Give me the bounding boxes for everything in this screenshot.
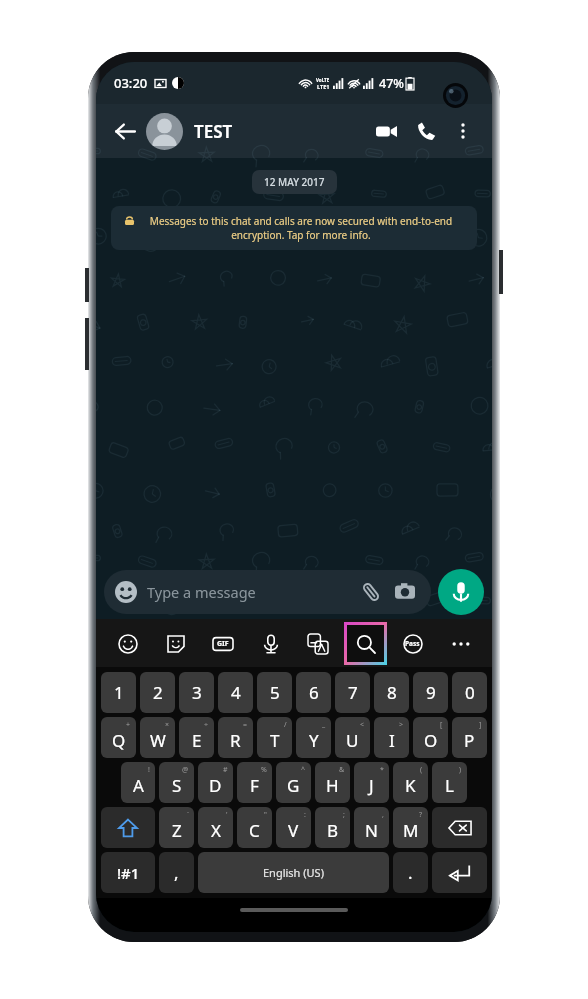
staticText: U (346, 729, 359, 752)
button[interactable]: GIF (201, 622, 244, 665)
button[interactable]: ( (393, 762, 428, 803)
button[interactable]: ) (432, 762, 467, 803)
staticText: 47% (379, 75, 404, 92)
button[interactable]: 9 (413, 672, 448, 713)
staticText: S (172, 774, 182, 797)
button[interactable]: & (315, 762, 350, 803)
button[interactable]: Stickers (154, 622, 197, 665)
button[interactable]: > (374, 717, 409, 758)
button[interactable]: TEST (146, 113, 366, 150)
button[interactable]: , (159, 852, 194, 893)
button[interactable]: 4 (218, 672, 253, 713)
staticText: : (304, 810, 306, 820)
button[interactable]: English (US) (198, 852, 389, 893)
button[interactable]: ; (315, 807, 350, 848)
button[interactable]: Search (347, 625, 384, 662)
button[interactable]: ÷ (179, 717, 214, 758)
button[interactable]: ' (198, 807, 233, 848)
button[interactable]: : (276, 807, 311, 848)
button[interactable]: Translate (296, 622, 339, 665)
staticText: R (230, 729, 241, 752)
button[interactable]: " (237, 807, 272, 848)
button[interactable]: Type a message (104, 570, 431, 614)
button[interactable]: Enter (432, 852, 487, 893)
button[interactable]: Camera (390, 577, 420, 607)
button[interactable]: 12 MAY 2017 (252, 170, 337, 194)
button[interactable]: Voice input (249, 622, 292, 665)
button[interactable]: 5 (257, 672, 292, 713)
button[interactable]: 0 (452, 672, 487, 713)
button[interactable]: 7 (335, 672, 370, 713)
button[interactable]: Attach (356, 577, 386, 607)
button[interactable]: Messages to this chat and calls are now … (111, 206, 477, 250)
staticText: 4 (231, 681, 241, 704)
button[interactable]: ` (159, 807, 194, 848)
button[interactable]: + (101, 717, 136, 758)
staticText: Y (309, 729, 319, 752)
staticText: % (261, 765, 267, 775)
staticText: Messages to this chat and calls are now … (139, 214, 463, 242)
button[interactable]: < (335, 717, 370, 758)
button[interactable]: × (140, 717, 175, 758)
button[interactable]: _ (296, 717, 331, 758)
button[interactable]: Emoji (106, 622, 149, 665)
staticText: ; (343, 810, 345, 820)
button[interactable]: 3 (179, 672, 214, 713)
staticText: ? (419, 810, 423, 820)
button[interactable]: Voice message (438, 569, 484, 615)
button[interactable]: @ (159, 762, 194, 803)
staticText: 1 (114, 681, 124, 704)
staticText: 8 (387, 681, 397, 704)
staticText: K (405, 774, 416, 797)
button[interactable]: ! (121, 762, 155, 803)
staticText: I (389, 729, 395, 752)
staticText: 03:20 (114, 74, 148, 92)
button[interactable]: More options (446, 114, 480, 148)
button[interactable]: # (198, 762, 233, 803)
staticText: = (243, 720, 248, 730)
button[interactable]: ^ (276, 762, 311, 803)
button[interactable]: Voice call (406, 111, 446, 151)
staticText: A (133, 774, 144, 797)
button[interactable]: !#1 (101, 852, 155, 893)
staticText: ] (479, 720, 482, 730)
staticText: 12 MAY 2017 (264, 175, 325, 189)
button[interactable]: 6 (296, 672, 331, 713)
staticText: [ (440, 720, 443, 730)
button[interactable]: 8 (374, 672, 409, 713)
button[interactable]: . (393, 852, 428, 893)
button[interactable]: ] (452, 717, 487, 758)
button[interactable]: / (257, 717, 292, 758)
staticText: E (192, 729, 202, 752)
button[interactable]: 1 (101, 672, 136, 713)
staticText: _ (322, 720, 326, 730)
button[interactable]: More (439, 622, 482, 665)
button[interactable]: [ (413, 717, 448, 758)
staticText: 2 (153, 681, 163, 704)
staticText: Pass (405, 639, 420, 648)
button[interactable]: * (354, 762, 389, 803)
button[interactable]: = (218, 717, 253, 758)
button[interactable]: Back (108, 114, 142, 148)
staticText: ) (459, 765, 462, 775)
staticText: 9 (426, 681, 436, 704)
button[interactable]: % (237, 762, 272, 803)
staticText: . (408, 861, 413, 884)
button[interactable]: 2 (140, 672, 175, 713)
staticText: Z (172, 819, 182, 842)
button[interactable]: Backspace (432, 807, 487, 848)
staticText: N (365, 819, 378, 842)
staticText: B (327, 819, 339, 842)
staticText: P (464, 729, 475, 752)
staticText: * (380, 765, 384, 775)
button[interactable]: , (354, 807, 389, 848)
staticText: ^ (301, 765, 306, 775)
button[interactable]: Passwords (391, 622, 434, 665)
staticText: Type a message (147, 582, 356, 602)
staticText: TEST (194, 120, 233, 143)
button[interactable]: Shift (101, 807, 155, 848)
button[interactable]: ? (393, 807, 428, 848)
staticText: T (270, 729, 280, 752)
staticText: L (445, 774, 454, 797)
button[interactable]: Video call (366, 111, 406, 151)
